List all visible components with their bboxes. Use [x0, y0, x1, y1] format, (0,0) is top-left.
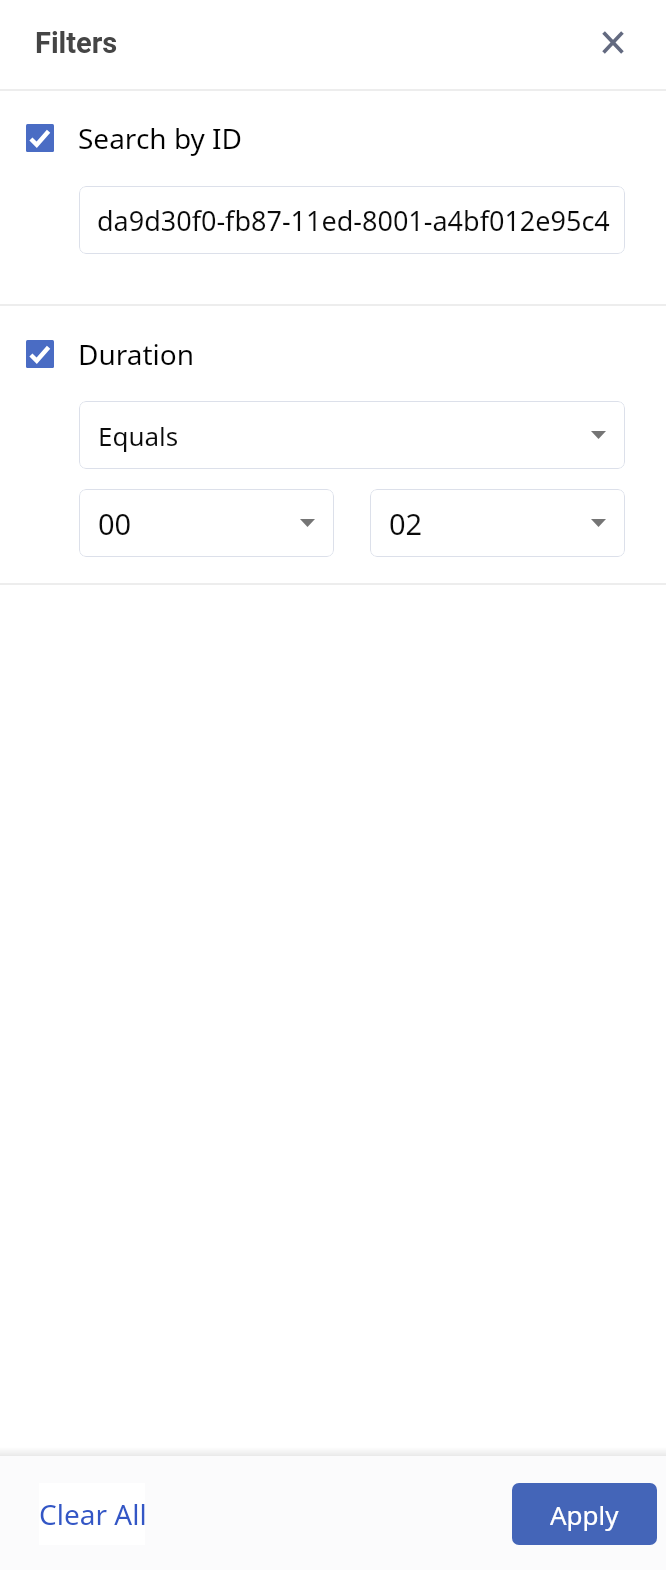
- button[interactable]: Search by ID: [0, 118, 666, 157]
- staticText: da9d30f0-fb87-11ed-8001-a4bf012e95c4: [97, 202, 610, 239]
- button[interactable]: Duration: [0, 334, 666, 373]
- staticText: Filters: [35, 26, 118, 60]
- staticText: 00: [98, 504, 132, 543]
- button[interactable]: Clear All: [39, 1483, 145, 1545]
- button[interactable]: Apply: [512, 1483, 657, 1545]
- staticText: Search by ID: [78, 119, 243, 157]
- staticText: Duration: [78, 335, 195, 373]
- staticText: Clear All: [39, 1495, 145, 1533]
- button[interactable]: Equals: [79, 401, 625, 469]
- button[interactable]: 00: [79, 489, 334, 557]
- button[interactable]: 02: [370, 489, 625, 557]
- staticText: 02: [389, 504, 423, 543]
- button[interactable]: da9d30f0-fb87-11ed-8001-a4bf012e95c4: [79, 186, 625, 254]
- button[interactable]: Close: [589, 19, 636, 66]
- staticText: Equals: [98, 418, 179, 453]
- staticText: Apply: [550, 1497, 619, 1532]
